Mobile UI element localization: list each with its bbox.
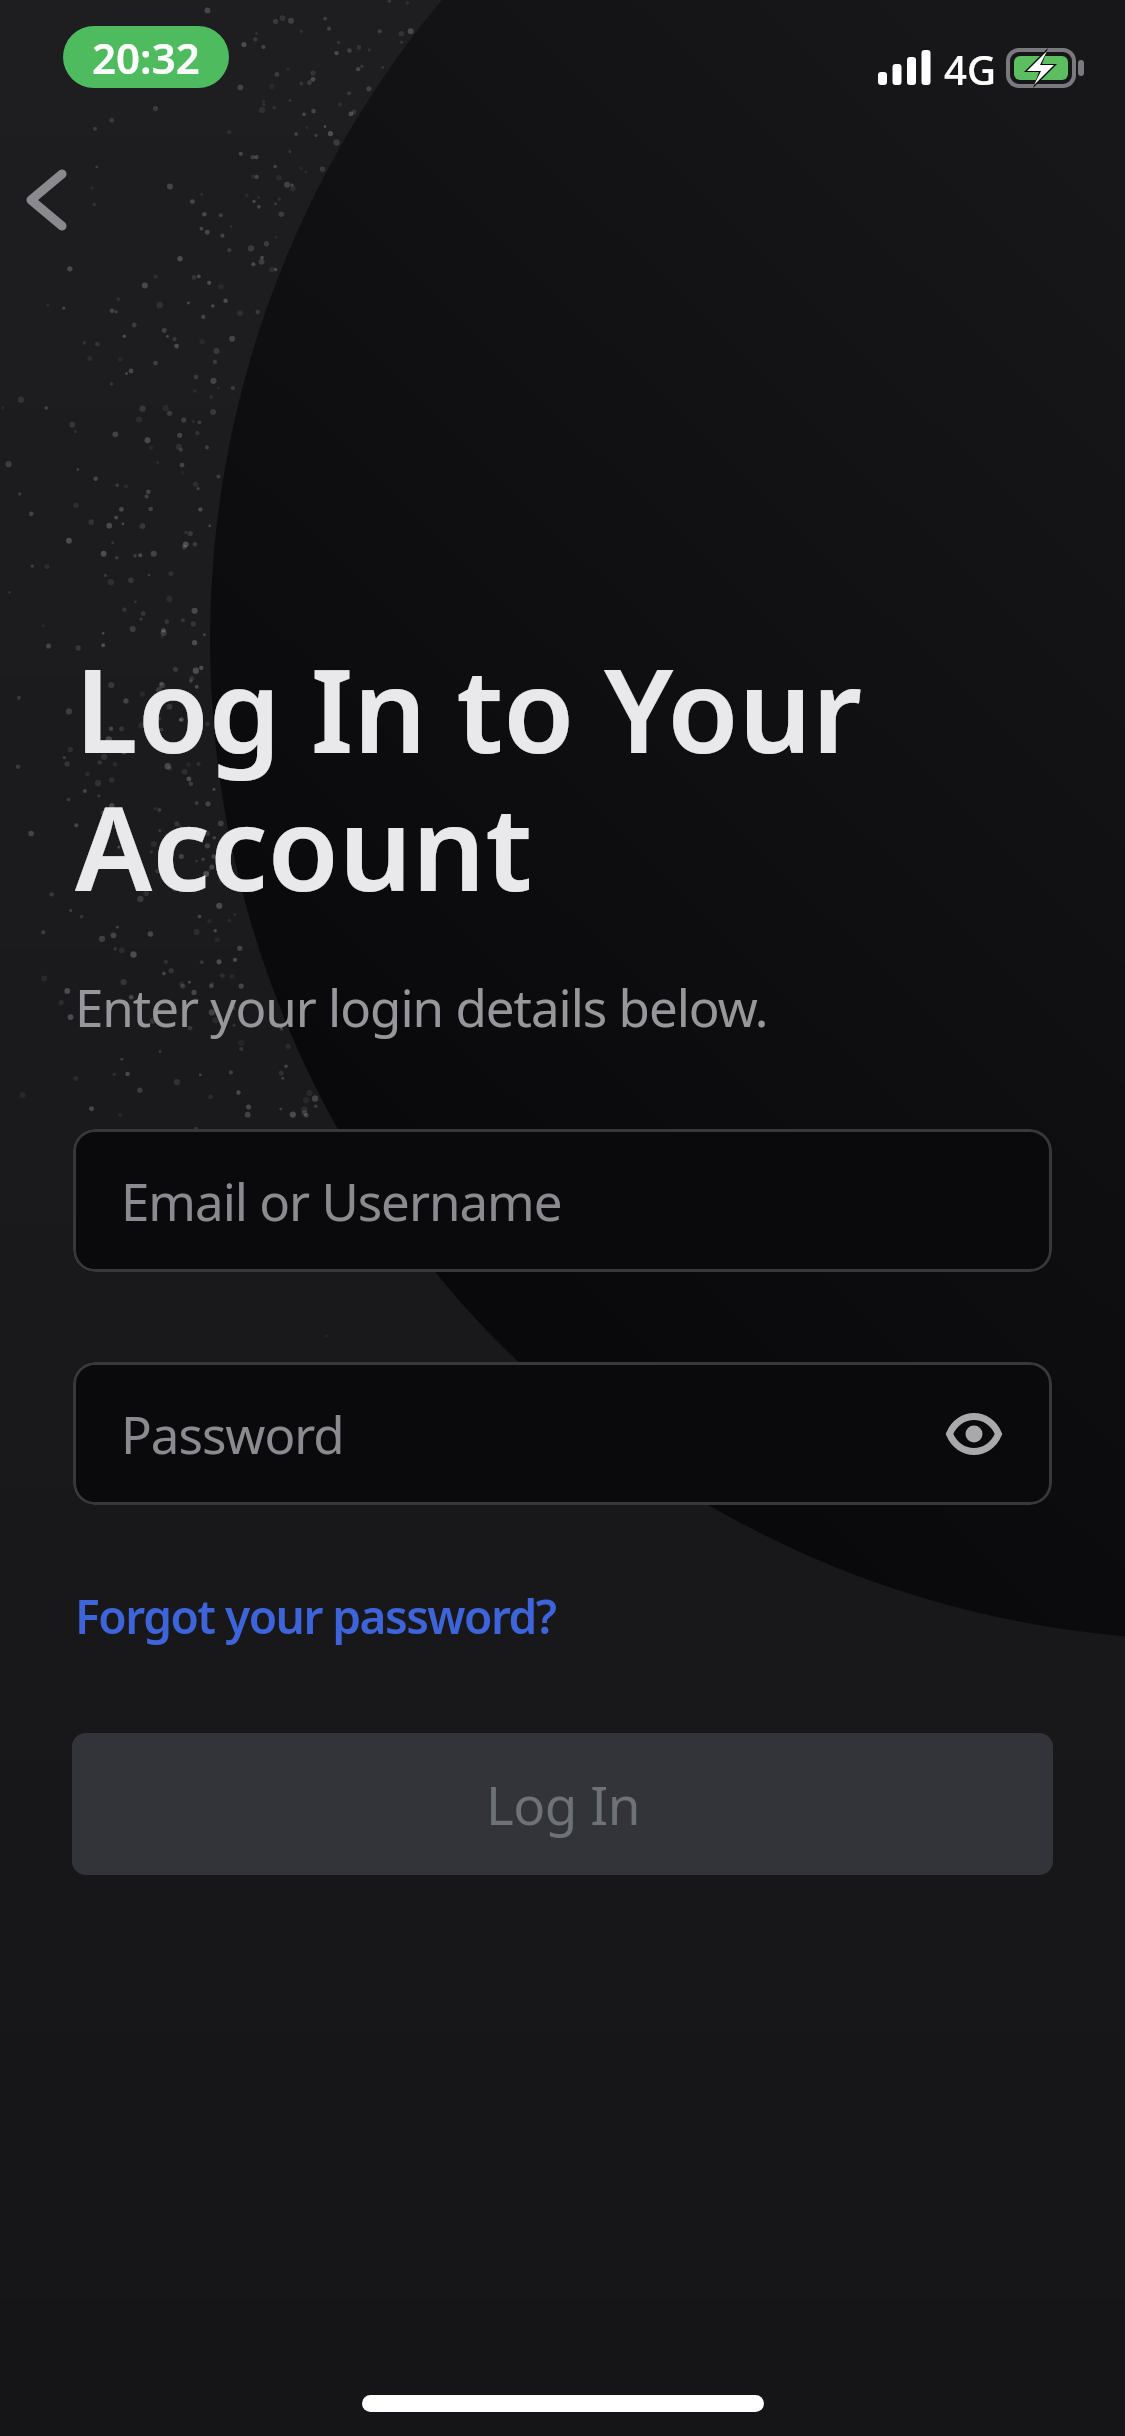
staticText: Log In bbox=[486, 1768, 640, 1840]
staticText: Log In to Your Account bbox=[75, 630, 862, 925]
staticText: Email or Username bbox=[121, 1166, 562, 1235]
button[interactable]: Log In bbox=[72, 1733, 1053, 1875]
button[interactable]: Password bbox=[73, 1362, 1052, 1505]
button[interactable]: Forgot your password? bbox=[75, 1585, 556, 1648]
button[interactable] bbox=[14, 158, 94, 238]
staticText: Enter your login details below. bbox=[75, 972, 768, 1041]
staticText: 20:32 bbox=[92, 29, 200, 86]
button[interactable]: Email or Username bbox=[73, 1129, 1052, 1272]
staticText: 4G bbox=[944, 42, 996, 96]
staticText: Password bbox=[121, 1399, 344, 1468]
